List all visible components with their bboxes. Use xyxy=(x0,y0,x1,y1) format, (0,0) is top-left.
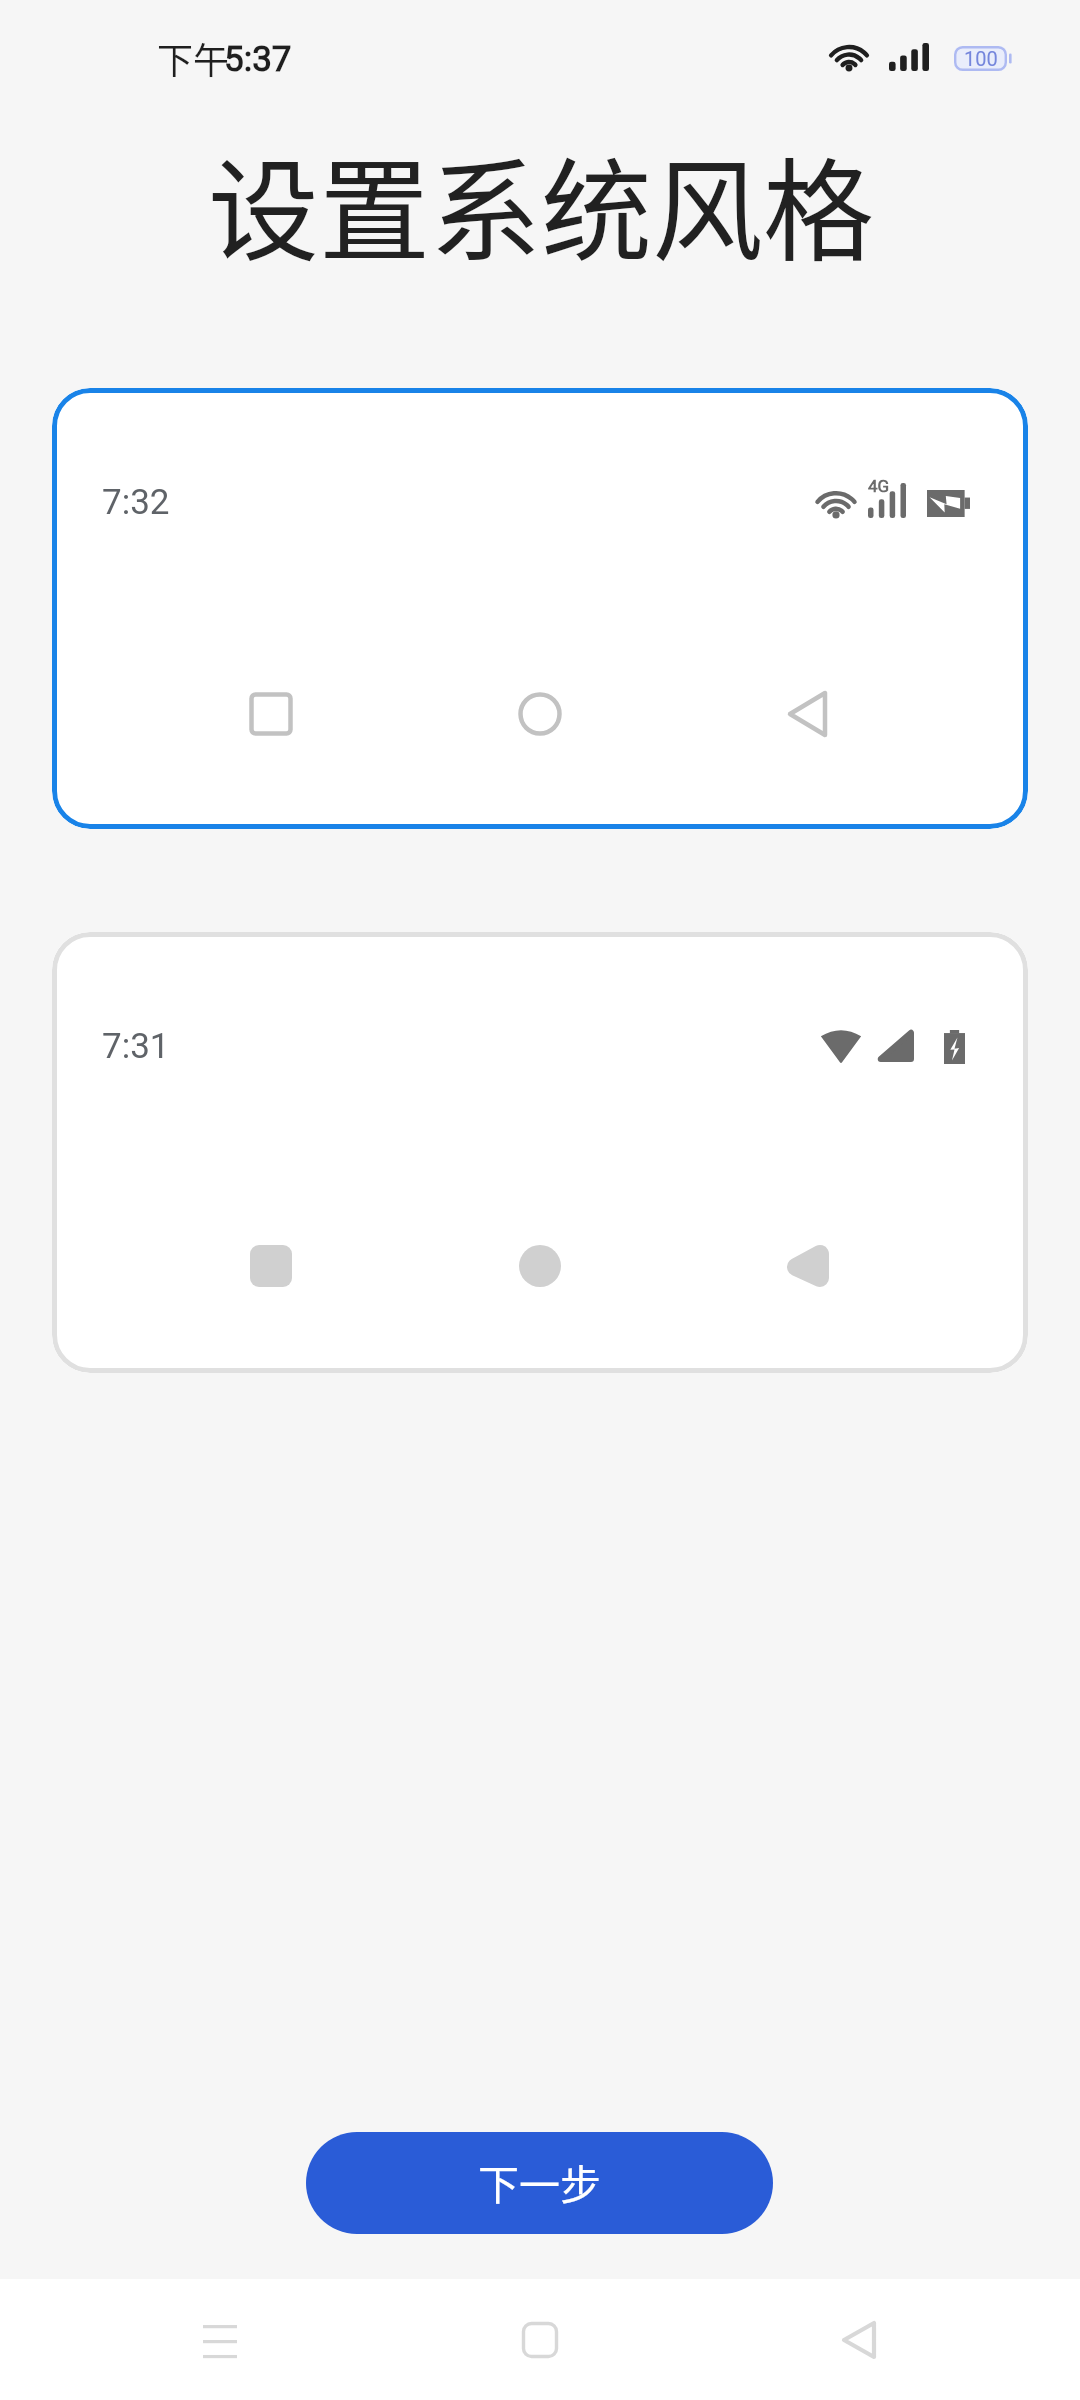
staticText: 7:31 xyxy=(102,1026,170,1067)
staticText: 下午 xyxy=(157,32,230,84)
staticText: 设置系统风格 xyxy=(1,123,1080,284)
button[interactable]: Home xyxy=(450,2279,630,2400)
button[interactable]: 全面屏手势导航 xyxy=(52,932,1028,1373)
staticText: 100 xyxy=(964,47,998,70)
button[interactable]: 经典导航键 (已选择) xyxy=(52,388,1028,829)
button[interactable]: Recent apps xyxy=(130,2279,310,2400)
staticText: 下一步 xyxy=(478,2152,601,2211)
button[interactable]: Back xyxy=(770,2279,950,2400)
staticText: 4G xyxy=(868,476,890,496)
button[interactable]: 下一步 xyxy=(306,2132,773,2234)
staticText: 7:32 xyxy=(102,482,170,523)
staticText: 5:37 xyxy=(224,39,292,80)
